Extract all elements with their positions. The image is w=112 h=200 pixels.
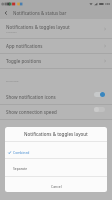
button[interactable]: Notifications & toggles layout [0,19,112,38]
button[interactable]: Back [0,7,12,19]
button[interactable]: Cancel [5,177,107,192]
staticText: Notifications & toggles layout [24,131,88,137]
button[interactable]: Separate [5,159,107,176]
button[interactable]: Combined [5,142,107,158]
staticText: Separate [13,166,28,171]
button[interactable]: Show connection speed [0,105,112,119]
staticText: Cancel [51,184,62,189]
staticText: Notifications & toggles layout [6,24,70,30]
staticText: Toggle positions [6,58,42,64]
staticText: STATUS BAR [6,80,19,83]
button[interactable]: App notifications [0,39,112,53]
staticText: App notifications [6,43,43,49]
button[interactable]: Toggle positions [0,54,112,68]
staticText: Notifications & status bar [13,10,67,16]
button[interactable]: Show notification icons [0,89,112,104]
staticText: Combined [13,150,30,155]
staticText: Show connection speed [6,109,57,115]
staticText: Show notification icons [6,94,56,100]
staticText: Combined [6,31,17,34]
